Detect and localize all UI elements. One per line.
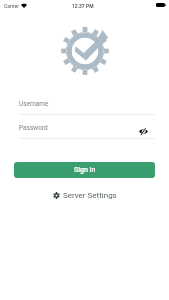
staticText: Password [19,124,48,132]
staticText: Sign in [74,166,96,174]
staticText: 12:37 PM [72,3,94,9]
staticText: Server Settings [63,191,117,200]
staticText: Carrier [4,3,19,9]
staticText: Username [19,100,49,108]
button[interactable]: Show password [136,124,150,138]
button[interactable]: Sign in [14,162,155,178]
button[interactable]: Server Settings [0,188,169,202]
